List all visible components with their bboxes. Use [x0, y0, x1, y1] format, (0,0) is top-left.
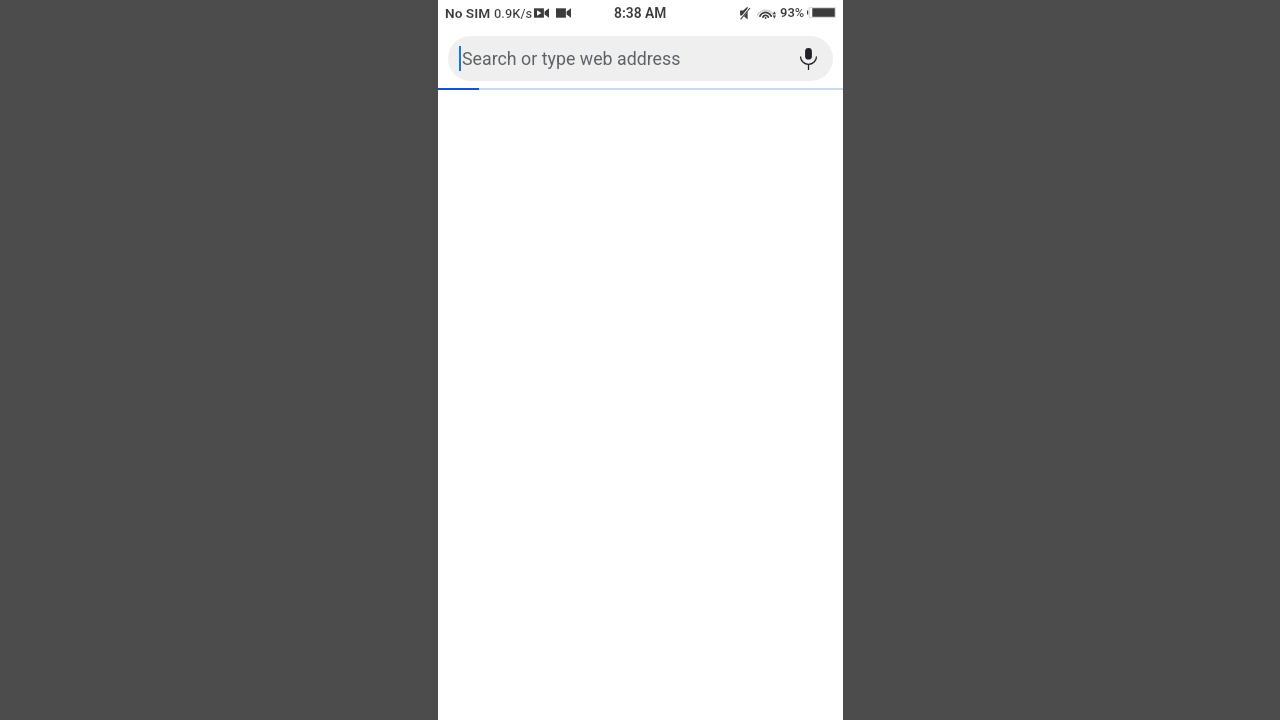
button[interactable]: Search or type web address: [448, 36, 833, 81]
button[interactable]: Voice search: [793, 44, 823, 74]
staticText: No SIM: [445, 5, 491, 21]
staticText: 93%: [780, 5, 805, 20]
staticText: 0.9K/s: [494, 6, 533, 21]
staticText: 8:38 AM: [614, 5, 667, 21]
staticText: Search or type web address: [462, 48, 681, 69]
